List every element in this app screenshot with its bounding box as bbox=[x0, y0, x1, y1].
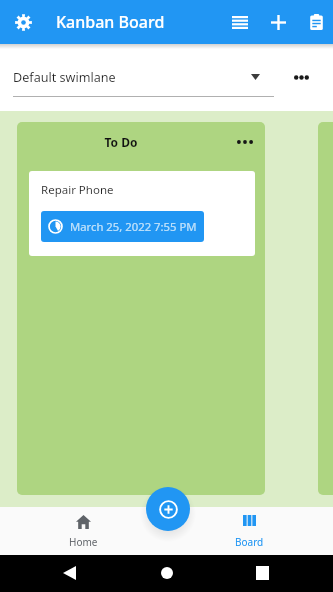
button[interactable]: Add card bbox=[146, 487, 190, 531]
button[interactable]: Assignments bbox=[299, 5, 333, 39]
staticText: To Do bbox=[17, 134, 225, 150]
button[interactable]: List view bbox=[223, 5, 257, 39]
button[interactable]: Home bbox=[0, 507, 166, 555]
button[interactable]: Repair Phone bbox=[29, 171, 255, 256]
button[interactable]: Settings bbox=[6, 5, 40, 39]
staticText: Home bbox=[69, 535, 98, 549]
button[interactable]: Add bbox=[261, 5, 295, 39]
staticText: Default swimlane bbox=[13, 69, 116, 86]
staticText: Repair Phone bbox=[41, 182, 114, 198]
staticText: Board bbox=[235, 535, 264, 549]
staticText: Kanban Board bbox=[56, 11, 165, 33]
staticText: March 25, 2022 7:55 PM bbox=[70, 219, 197, 234]
button[interactable]: Back bbox=[57, 561, 81, 585]
button[interactable]: More options bbox=[286, 62, 316, 92]
button[interactable]: Column options bbox=[225, 122, 265, 162]
button[interactable]: March 25, 2022 7:55 PM bbox=[41, 211, 204, 242]
button[interactable]: Expand swimlane bbox=[240, 62, 270, 92]
button[interactable]: Recents bbox=[250, 561, 274, 585]
button[interactable]: Home bbox=[155, 561, 179, 585]
button[interactable]: Board bbox=[166, 507, 333, 555]
